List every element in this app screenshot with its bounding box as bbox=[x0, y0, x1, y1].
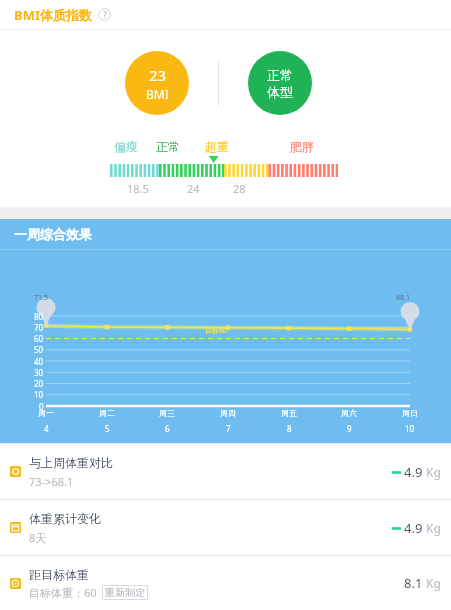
staticText: 24 bbox=[187, 181, 200, 196]
button[interactable]: 与上周体重对比 bbox=[0, 444, 451, 499]
button[interactable]: 重新制定 bbox=[102, 585, 148, 600]
staticText: 71.5 bbox=[34, 293, 48, 303]
staticText: 4.9 bbox=[404, 519, 423, 537]
staticText: 重新制定 bbox=[105, 586, 145, 599]
staticText: 距目标体重 bbox=[29, 567, 89, 582]
staticText: 体重累计变化 bbox=[29, 511, 101, 526]
button[interactable]: 23 bbox=[125, 51, 189, 115]
staticText: 73->68.1 bbox=[29, 474, 74, 489]
staticText: 正常 bbox=[267, 67, 293, 83]
staticText: 68.1 bbox=[396, 293, 410, 303]
staticText: 20 bbox=[34, 378, 44, 389]
staticText: 周三 bbox=[159, 408, 175, 418]
button[interactable]: BMI体质指数 bbox=[0, 0, 451, 29]
button[interactable]: Help bbox=[98, 8, 111, 21]
staticText: BMI体质指数 bbox=[14, 6, 92, 24]
staticText: 5 bbox=[105, 423, 110, 434]
staticText: 周四 bbox=[220, 408, 236, 418]
staticText: 周五 bbox=[281, 408, 297, 418]
button[interactable]: 一周综合效果 bbox=[0, 219, 451, 249]
staticText: Kg bbox=[426, 464, 441, 480]
staticText: 60 bbox=[34, 333, 44, 344]
staticText: 肥胖 bbox=[290, 139, 314, 154]
button[interactable]: 距目标体重 bbox=[0, 556, 451, 610]
staticText: 目标60 bbox=[205, 326, 228, 336]
button[interactable]: 体重累计变化 bbox=[0, 500, 451, 555]
staticText: 正常 bbox=[156, 139, 180, 154]
staticText: 周一 bbox=[38, 408, 54, 418]
staticText: 6 bbox=[165, 423, 170, 434]
staticText: 周日 bbox=[402, 408, 418, 418]
staticText: 30 bbox=[34, 367, 44, 378]
staticText: ? bbox=[103, 9, 107, 20]
staticText: 4 bbox=[44, 423, 49, 434]
staticText: 0 bbox=[39, 401, 44, 412]
staticText: 50 bbox=[34, 344, 44, 355]
staticText: 10 bbox=[405, 423, 415, 434]
staticText: 9 bbox=[347, 423, 352, 434]
staticText: 目标体重：60 bbox=[29, 585, 97, 600]
staticText: 10 bbox=[34, 389, 44, 400]
staticText: 周二 bbox=[99, 408, 115, 418]
staticText: 与上周体重对比 bbox=[29, 455, 113, 470]
staticText: BMI bbox=[146, 86, 169, 102]
staticText: 一周综合效果 bbox=[14, 226, 92, 242]
staticText: 超重 bbox=[205, 139, 229, 154]
staticText: 8.1 bbox=[404, 574, 423, 592]
button[interactable]: 正常 bbox=[248, 51, 312, 115]
staticText: Kg bbox=[426, 520, 441, 536]
staticText: 8 bbox=[287, 423, 292, 434]
staticText: 23 bbox=[149, 65, 167, 85]
staticText: 70 bbox=[34, 322, 44, 333]
staticText: 偏瘦 bbox=[114, 139, 138, 154]
staticText: 18.5 bbox=[127, 181, 149, 196]
staticText: 28 bbox=[233, 181, 246, 196]
staticText: Kg bbox=[426, 575, 441, 591]
staticText: 8天 bbox=[29, 530, 47, 545]
staticText: 80 bbox=[34, 311, 44, 322]
staticText: 40 bbox=[34, 356, 44, 367]
staticText: 周六 bbox=[341, 408, 357, 418]
staticText: 7 bbox=[226, 423, 231, 434]
staticText: 4.9 bbox=[404, 463, 423, 481]
staticText: 体型 bbox=[267, 84, 293, 100]
